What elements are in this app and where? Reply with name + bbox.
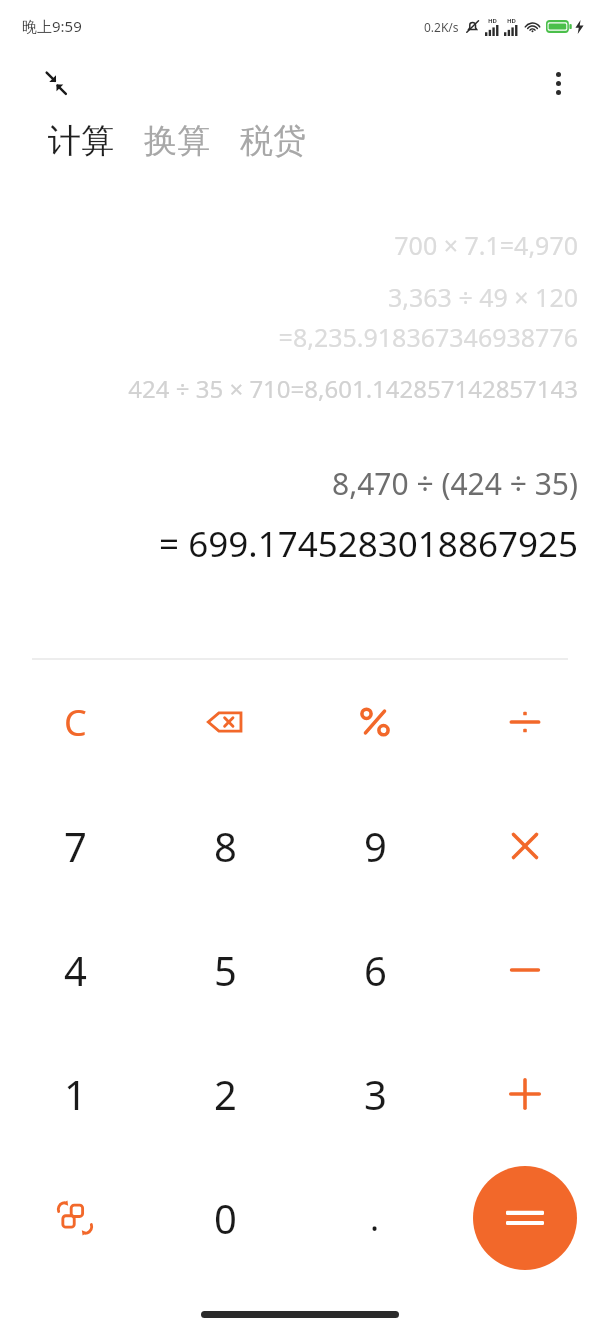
staticText: =8,235.918367346938776 [278, 320, 578, 354]
button[interactable]: Minus [450, 908, 600, 1032]
staticText: 晚上9:59 [22, 16, 82, 36]
staticText: 3 [364, 1067, 387, 1121]
staticText: 1 [64, 1067, 87, 1121]
button[interactable]: 1 [0, 1032, 150, 1156]
staticText: 8 [214, 819, 237, 873]
staticText: 2 [214, 1067, 237, 1121]
staticText: 5 [214, 943, 237, 997]
button[interactable]: 4 [0, 908, 150, 1032]
staticText: 计算 [48, 120, 114, 162]
staticText: 9 [364, 819, 387, 873]
staticText: 7 [64, 819, 87, 873]
staticText: 3,363 ÷ 49 × 120 [387, 280, 578, 314]
button[interactable]: Divide [450, 660, 600, 784]
button[interactable]: Equals [473, 1166, 577, 1270]
button[interactable]: Clear [0, 660, 150, 784]
button[interactable]: Multiply [450, 784, 600, 908]
staticText: 0 [214, 1191, 237, 1245]
button[interactable]: 2 [150, 1032, 300, 1156]
staticText: 0.2K/s [424, 19, 459, 35]
staticText: 税贷 [240, 120, 306, 162]
button[interactable]: More options [536, 61, 580, 105]
button[interactable]: 计算 [44, 114, 118, 168]
button[interactable]: 5 [150, 908, 300, 1032]
staticText: 6 [364, 943, 387, 997]
staticText: HD [507, 17, 516, 25]
button[interactable]: Plus [450, 1032, 600, 1156]
button[interactable]: 9 [300, 784, 450, 908]
staticText: . [370, 1195, 380, 1241]
staticText: 424 ÷ 35 × 710=8,601.142857142857143 [128, 372, 578, 405]
staticText: HD [488, 17, 497, 25]
staticText: = 699.1745283018867925 [159, 520, 578, 568]
button[interactable]: 0 [150, 1156, 300, 1280]
staticText: 4 [64, 943, 87, 997]
staticText: 换算 [144, 120, 210, 162]
button[interactable]: Collapse [34, 61, 78, 105]
staticText: 700 × 7.1=4,970 [394, 228, 578, 262]
staticText: C [64, 698, 87, 747]
button[interactable]: 6 [300, 908, 450, 1032]
button[interactable]: Convert [0, 1156, 150, 1280]
button[interactable]: 3 [300, 1032, 450, 1156]
button[interactable]: . [300, 1156, 450, 1280]
staticText: 8,470 ÷ (424 ÷ 35) [332, 463, 578, 504]
button[interactable]: 税贷 [236, 114, 310, 168]
button[interactable]: Percent [300, 660, 450, 784]
button[interactable]: 7 [0, 784, 150, 908]
button[interactable]: Backspace [150, 660, 300, 784]
button[interactable]: 换算 [140, 114, 214, 168]
button[interactable]: 8 [150, 784, 300, 908]
